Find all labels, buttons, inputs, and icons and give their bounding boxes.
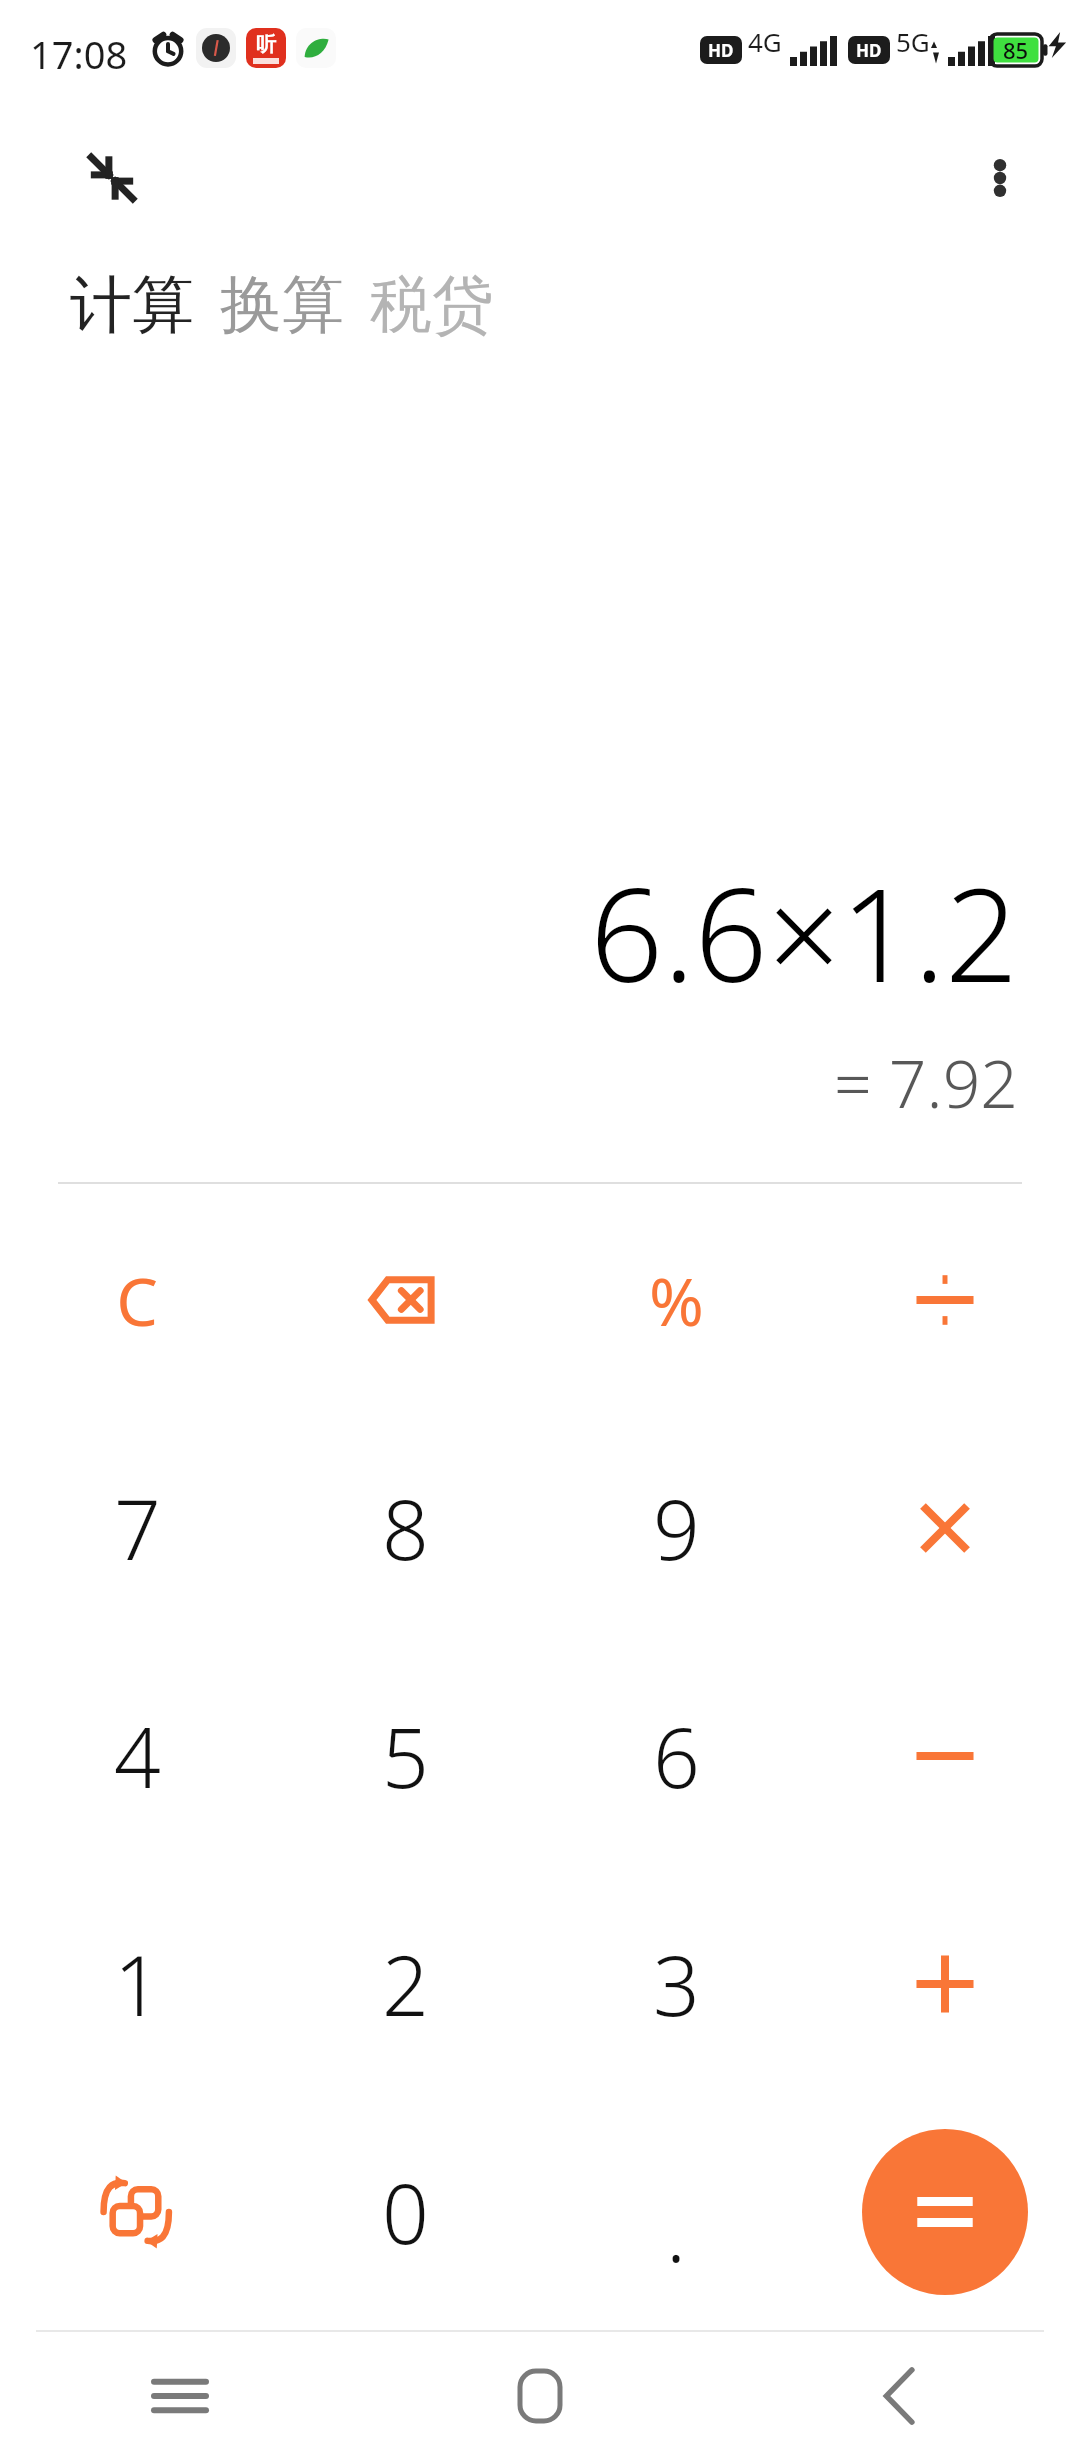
button[interactable]: Home	[360, 2332, 720, 2460]
button[interactable]: %	[551, 1186, 801, 1414]
staticText: = 7.92	[833, 1037, 1018, 1127]
button[interactable]: 5	[280, 1642, 530, 1870]
button[interactable]: Equals	[862, 2129, 1028, 2295]
staticText: 4G	[748, 24, 782, 59]
button[interactable]: 0	[280, 2098, 530, 2326]
button[interactable]: Collapse	[74, 140, 150, 216]
staticText: 9	[653, 1472, 700, 1584]
staticText: 3	[653, 1928, 700, 2040]
button[interactable]: Multiply	[820, 1414, 1070, 1642]
staticText: 7	[114, 1472, 161, 1584]
button[interactable]: Convert units	[12, 2098, 262, 2326]
button[interactable]: 3	[551, 1870, 801, 2098]
staticText: 听	[256, 32, 276, 57]
staticText: 85	[1003, 35, 1029, 65]
button[interactable]: 4	[12, 1642, 262, 1870]
button[interactable]: 换算	[220, 266, 350, 344]
button[interactable]: 2	[280, 1870, 530, 2098]
button[interactable]: Backspace	[280, 1186, 530, 1414]
button[interactable]: Plus	[820, 1870, 1070, 2098]
button[interactable]: Back	[720, 2332, 1080, 2460]
button[interactable]: 1	[12, 1870, 262, 2098]
staticText: 税贷	[370, 266, 494, 344]
staticText: C	[116, 1255, 158, 1345]
staticText: .	[666, 2174, 687, 2286]
staticText: 8	[382, 1472, 429, 1584]
button[interactable]: 9	[551, 1414, 801, 1642]
button[interactable]: 8	[280, 1414, 530, 1642]
staticText: 2	[382, 1928, 429, 2040]
button[interactable]: 6	[551, 1642, 801, 1870]
button[interactable]: 税贷	[370, 266, 500, 344]
staticText: 6	[653, 1700, 700, 1812]
staticText: 1	[114, 1928, 161, 2040]
button[interactable]: Minus	[820, 1642, 1070, 1870]
staticText: %	[649, 1255, 704, 1345]
staticText: 4	[114, 1700, 161, 1812]
staticText: 17:08	[30, 28, 128, 80]
button[interactable]: .	[551, 2098, 801, 2326]
staticText: 换算	[220, 266, 344, 344]
button[interactable]: 7	[12, 1414, 262, 1642]
staticText: 0	[382, 2156, 429, 2268]
button[interactable]: C	[12, 1186, 262, 1414]
staticText: 6.6×1.2	[590, 845, 1018, 1019]
staticText: 计算	[70, 266, 194, 344]
button[interactable]: More options	[960, 138, 1040, 218]
staticText: HD	[708, 39, 734, 62]
staticText: 5	[382, 1700, 429, 1812]
button[interactable]: Divide	[820, 1186, 1070, 1414]
button[interactable]: 计算	[70, 266, 200, 344]
staticText: 5G	[896, 24, 930, 59]
staticText: HD	[856, 39, 882, 62]
button[interactable]: Recent apps	[0, 2332, 360, 2460]
